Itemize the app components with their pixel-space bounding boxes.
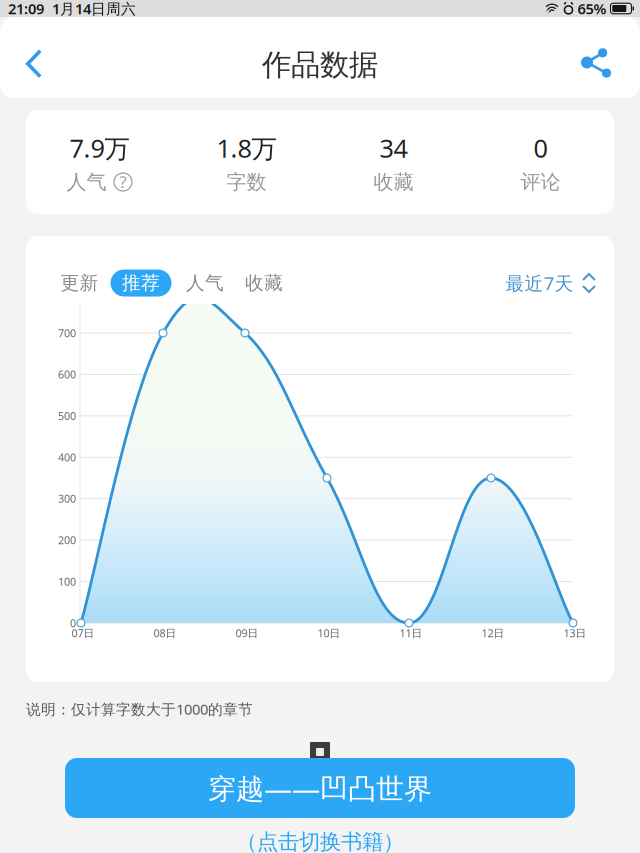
- staticText: 说明：仅计算字数大于1000的章节: [26, 699, 253, 719]
- button[interactable]: Share: [566, 32, 626, 98]
- staticText: 600: [58, 367, 76, 381]
- staticText: 21:09: [8, 0, 44, 18]
- staticText: 400: [58, 450, 76, 464]
- button[interactable]: Back: [4, 31, 64, 97]
- button[interactable]: 人气: [179, 266, 231, 300]
- staticText: 200: [58, 533, 76, 547]
- staticText: 09日: [235, 626, 258, 640]
- button[interactable]: 最近7天: [481, 266, 596, 300]
- staticText: 700: [58, 326, 76, 340]
- staticText: 穿越——凹凸世界: [208, 769, 432, 807]
- staticText: 11日: [399, 626, 422, 640]
- button[interactable]: 穿越——凹凸世界: [65, 758, 575, 818]
- staticText: 34: [379, 131, 407, 165]
- staticText: 08日: [153, 626, 176, 640]
- staticText: 07日: [71, 626, 94, 640]
- staticText: 人气: [186, 271, 224, 294]
- staticText: 0: [70, 616, 76, 630]
- button[interactable]: 推荐: [110, 269, 171, 296]
- staticText: 评论: [520, 170, 560, 194]
- staticText: 10日: [317, 626, 340, 640]
- staticText: 人气: [66, 170, 106, 194]
- staticText: （点击切换书籍）: [236, 829, 404, 853]
- staticText: 12日: [481, 626, 504, 640]
- staticText: 65%: [577, 0, 606, 18]
- staticText: ?: [119, 171, 126, 193]
- button[interactable]: （点击切换书籍）: [190, 826, 450, 853]
- staticText: 7.9万: [69, 131, 129, 165]
- staticText: 最近7天: [505, 271, 573, 295]
- staticText: 1.8万: [216, 131, 276, 165]
- staticText: 更新: [60, 271, 98, 294]
- button[interactable]: 更新: [50, 266, 108, 300]
- staticText: 收藏: [245, 271, 283, 294]
- staticText: 500: [58, 409, 76, 423]
- staticText: 0: [533, 131, 547, 165]
- button[interactable]: 收藏: [238, 266, 290, 300]
- staticText: 收藏: [373, 170, 413, 194]
- staticText: 作品数据: [262, 47, 378, 83]
- staticText: 100: [58, 574, 76, 589]
- staticText: 推荐: [122, 271, 160, 294]
- staticText: 字数: [226, 170, 266, 194]
- staticText: 13日: [563, 626, 586, 640]
- staticText: 300: [58, 492, 76, 506]
- staticText: 1月14日周六: [52, 0, 136, 18]
